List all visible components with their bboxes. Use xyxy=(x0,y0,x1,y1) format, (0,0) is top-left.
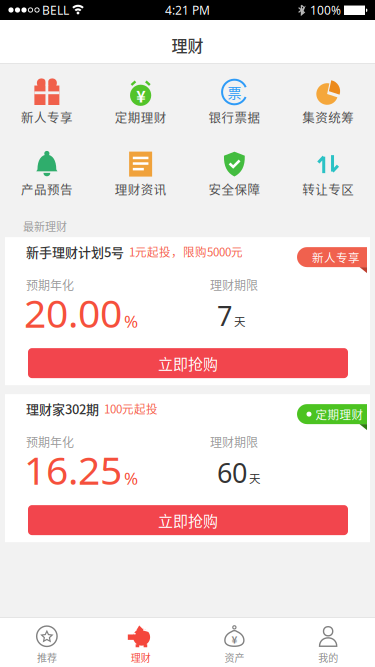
staticText: 定期理财 xyxy=(315,406,363,422)
staticText: ¥ xyxy=(231,632,237,646)
staticText: 理财资讯 xyxy=(115,180,167,198)
staticText: 1元起投，限购5000元 xyxy=(129,243,243,260)
staticText: 立即抢购 xyxy=(158,509,218,531)
button[interactable]: 产品预告 xyxy=(0,150,94,198)
button[interactable]: 转让专区 xyxy=(281,150,375,198)
staticText: 最新理财 xyxy=(23,218,67,234)
staticText: 立即抢购 xyxy=(158,352,218,374)
button[interactable]: 推荐 xyxy=(0,625,94,665)
button[interactable]: 我的 xyxy=(281,625,375,665)
button[interactable]: 理财家302期 xyxy=(5,394,370,542)
button[interactable]: 立即抢购 xyxy=(28,348,348,378)
staticText: 天 xyxy=(249,470,261,486)
button[interactable]: 理财资讯 xyxy=(94,150,188,198)
staticText: 产品预告 xyxy=(21,180,73,198)
button[interactable]: 新手理财计划5号 xyxy=(5,237,370,385)
staticText: 银行票据 xyxy=(208,108,260,126)
button[interactable]: 立即抢购 xyxy=(28,505,348,535)
staticText: % xyxy=(124,467,138,490)
staticText: 理财 xyxy=(131,650,151,665)
button[interactable]: ¥ xyxy=(94,78,188,126)
staticText: 定期理财 xyxy=(115,108,167,126)
staticText: 4:21 PM xyxy=(165,2,210,18)
staticText: BELL xyxy=(42,2,69,18)
staticText: 推荐 xyxy=(37,650,57,665)
staticText: 预期年化 xyxy=(26,276,74,293)
staticText: 7 xyxy=(217,297,232,334)
button[interactable]: 新人专享 xyxy=(0,78,94,126)
staticText: 天 xyxy=(234,313,246,329)
staticText: 20.00 xyxy=(24,286,122,339)
staticText: % xyxy=(124,310,138,333)
staticText: 资产 xyxy=(224,650,244,665)
staticText: 预期年化 xyxy=(26,433,74,450)
button[interactable]: 安全保障 xyxy=(187,150,281,198)
staticText: 集资统筹 xyxy=(302,108,354,126)
button[interactable]: 理财 xyxy=(94,625,188,665)
button[interactable]: 集资统筹 xyxy=(281,78,375,126)
staticText: 16.25 xyxy=(24,443,122,496)
staticText: 转让专区 xyxy=(302,180,354,198)
staticText: 理财 xyxy=(171,33,203,57)
staticText: 理财期限 xyxy=(210,276,258,293)
staticText: 安全保障 xyxy=(208,180,260,198)
staticText: 100元起投 xyxy=(104,400,158,417)
staticText: 新人专享 xyxy=(312,249,360,265)
staticText: 100% xyxy=(307,2,344,18)
staticText: 票 xyxy=(227,82,241,102)
staticText: 理财期限 xyxy=(210,433,258,450)
staticText: ¥ xyxy=(136,84,145,107)
staticText: 我的 xyxy=(318,650,338,665)
button[interactable]: 票 xyxy=(187,78,281,126)
staticText: 60 xyxy=(217,454,247,491)
staticText: 新人专享 xyxy=(21,108,73,126)
staticText: 理财家302期 xyxy=(26,399,99,418)
staticText: 新手理财计划5号 xyxy=(26,242,124,261)
button[interactable]: ¥ xyxy=(187,625,281,665)
